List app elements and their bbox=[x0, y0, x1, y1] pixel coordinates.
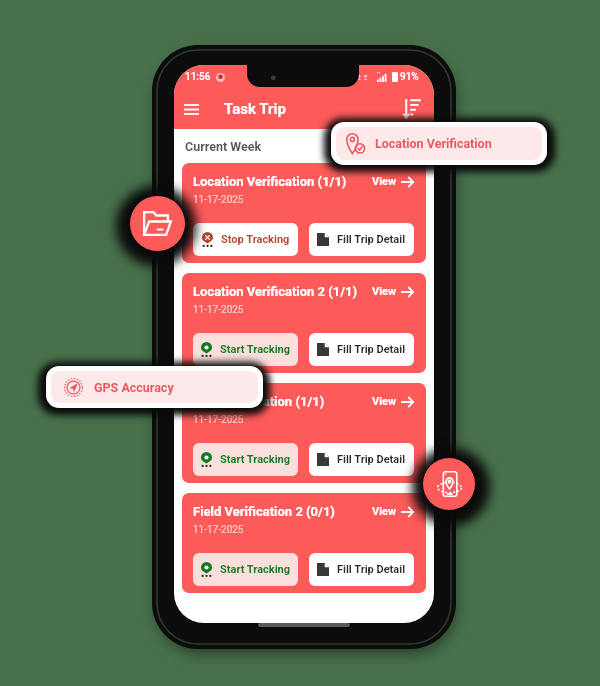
staticText: Fill Trip Detail bbox=[337, 453, 406, 466]
button[interactable]: View bbox=[372, 395, 414, 408]
button[interactable]: Location Verification 2 (1/1) bbox=[182, 273, 426, 373]
staticText: 11-17-2025 bbox=[193, 524, 244, 536]
staticText: Location Verification 2 (1/1) bbox=[193, 284, 358, 299]
staticText: Fill Trip Detail bbox=[337, 563, 406, 576]
staticText: Start Tracking bbox=[220, 563, 291, 576]
button[interactable]: Live phone location bbox=[423, 458, 475, 510]
staticText: Stop Tracking bbox=[221, 233, 290, 246]
staticText: View bbox=[372, 285, 397, 298]
staticText: 11-17-2025 bbox=[193, 304, 244, 316]
staticText: Current Week bbox=[185, 139, 262, 154]
button[interactable]: Location Verification bbox=[336, 127, 542, 160]
staticText: 11-17-2025 bbox=[193, 414, 244, 426]
button[interactable]: View bbox=[372, 285, 414, 298]
button[interactable]: View bbox=[372, 175, 414, 188]
staticText: Fill Trip Detail bbox=[337, 343, 406, 356]
button[interactable]: Start Tracking bbox=[193, 443, 298, 476]
staticText: View bbox=[372, 395, 397, 408]
button[interactable]: GPS Accuracy bbox=[51, 371, 258, 403]
staticText: GPS Accuracy bbox=[94, 380, 174, 395]
button[interactable]: Fill Trip Detail bbox=[309, 443, 414, 476]
button[interactable]: Stop Tracking bbox=[193, 223, 298, 256]
button[interactable]: Open folder bbox=[130, 196, 185, 251]
button[interactable]: Fill Trip Detail bbox=[309, 553, 414, 586]
button[interactable]: Start Tracking bbox=[193, 553, 298, 586]
staticText: 11-17-2025 bbox=[193, 194, 244, 206]
staticText: Task Trip bbox=[224, 100, 286, 118]
button[interactable]: Start Tracking bbox=[193, 333, 298, 366]
staticText: Fill Trip Detail bbox=[337, 233, 406, 246]
button[interactable]: Field Verification 2 (0/1) bbox=[182, 493, 426, 593]
staticText: 91% bbox=[400, 71, 419, 83]
staticText: Location Verification (1/1) bbox=[193, 174, 347, 189]
staticText: View bbox=[372, 175, 397, 188]
button[interactable]: Sort bbox=[399, 96, 425, 122]
staticText: 11:56 bbox=[185, 71, 211, 83]
staticText: Start Tracking bbox=[220, 343, 291, 356]
button[interactable]: Location Verification (1/1) bbox=[182, 163, 426, 263]
staticText: Field Verification (1/1) bbox=[193, 394, 325, 409]
button[interactable]: Field Verification (1/1) bbox=[182, 383, 426, 483]
button[interactable]: Open navigation menu bbox=[184, 97, 208, 121]
staticText: Field Verification 2 (0/1) bbox=[193, 504, 335, 519]
button[interactable]: View bbox=[372, 505, 414, 518]
button[interactable]: Fill Trip Detail bbox=[309, 223, 414, 256]
staticText: Start Tracking bbox=[220, 453, 291, 466]
staticText: Location Verification bbox=[375, 136, 492, 151]
staticText: View bbox=[372, 505, 397, 518]
button[interactable]: Fill Trip Detail bbox=[309, 333, 414, 366]
